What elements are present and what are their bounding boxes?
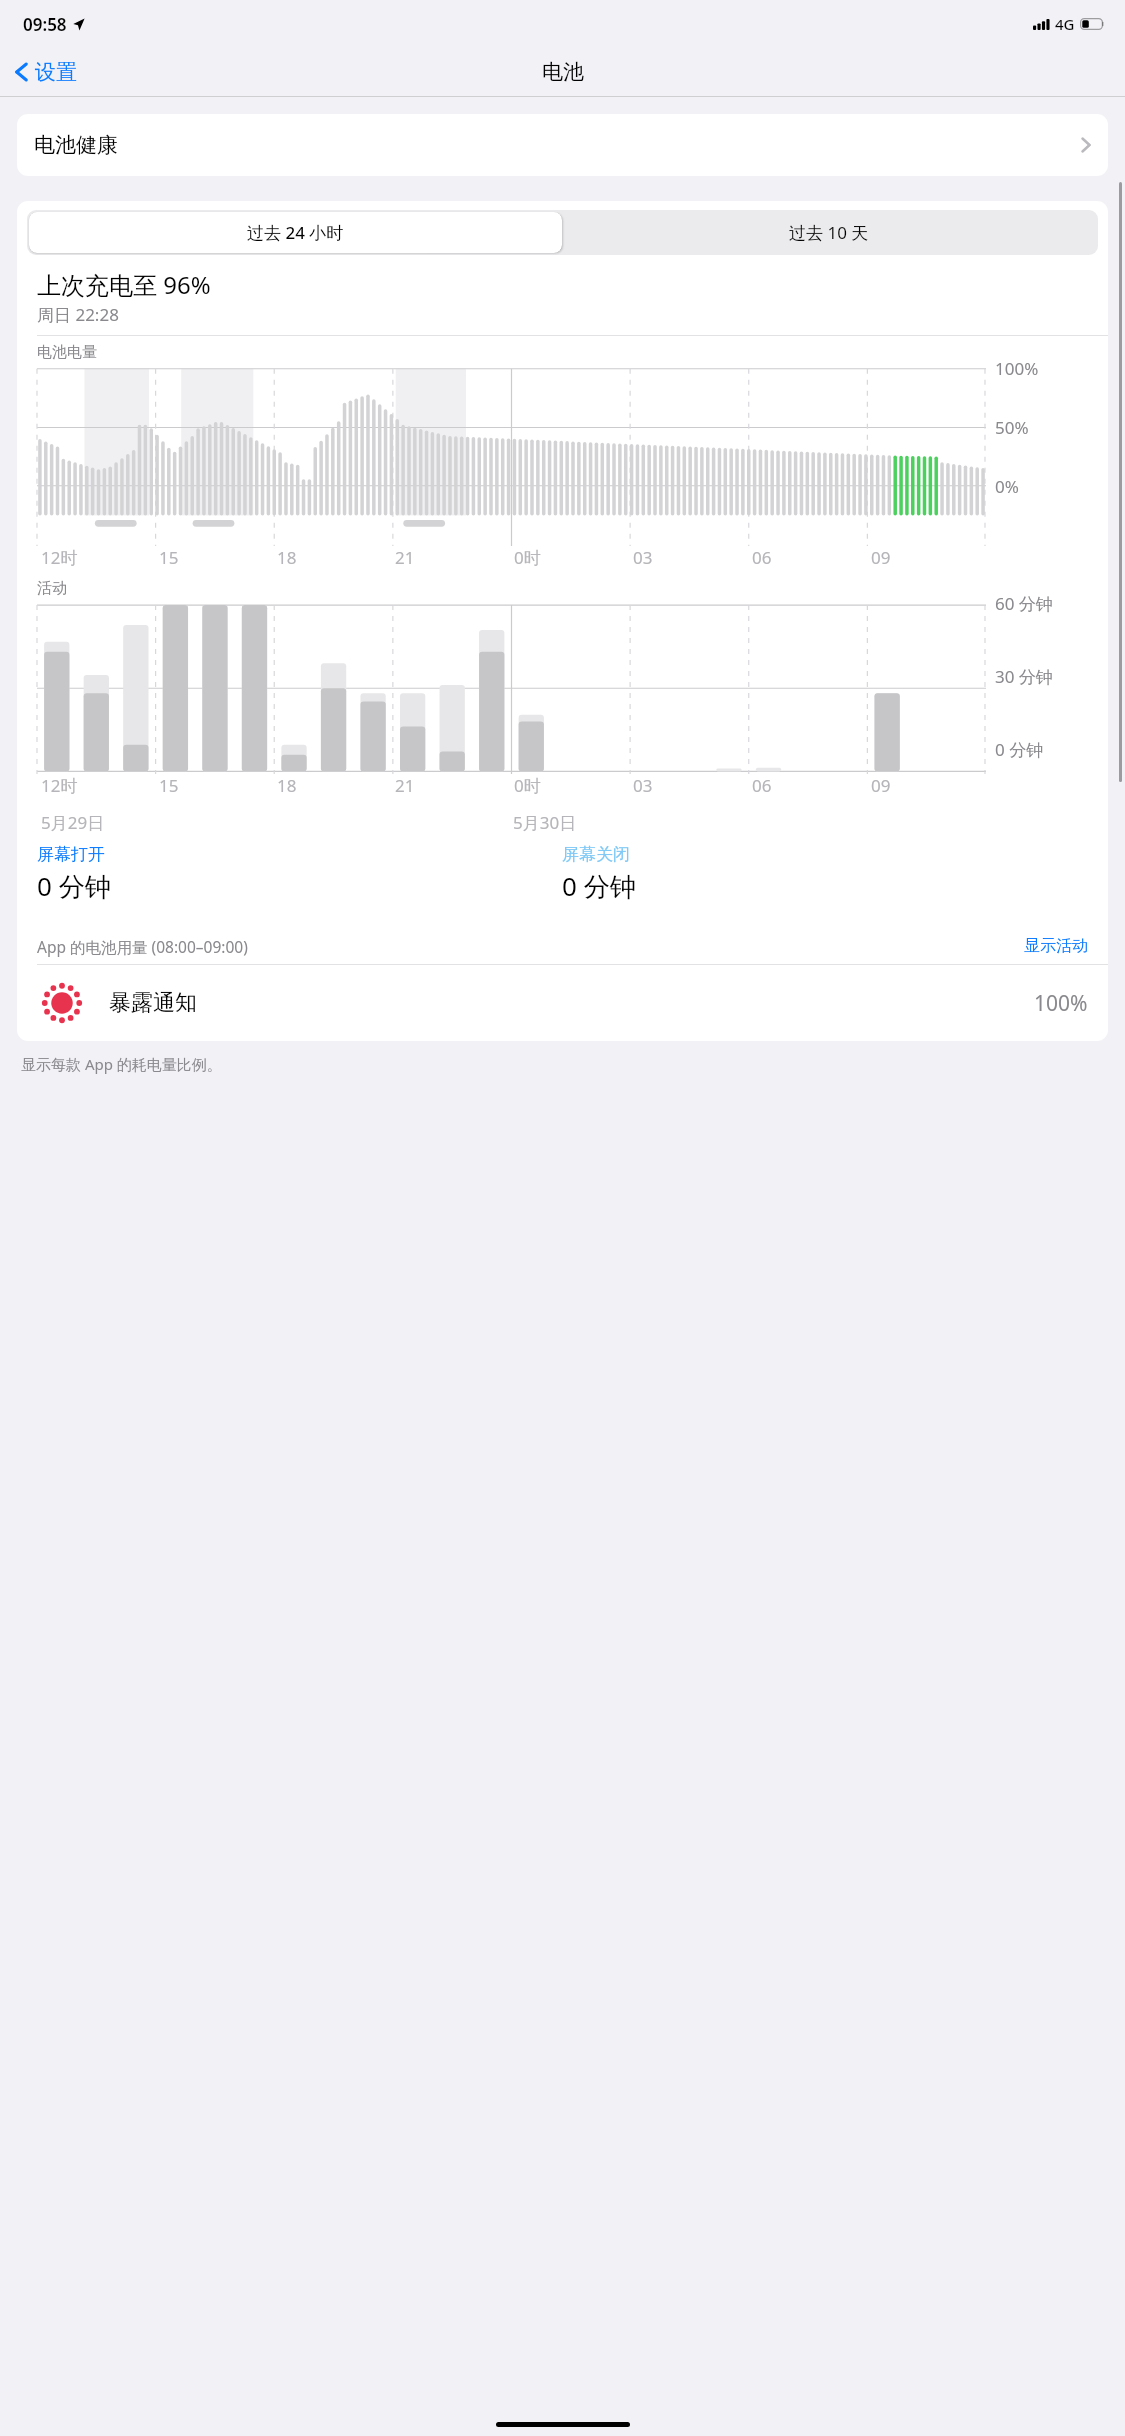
staticText: 活动 [37,579,67,598]
staticText: 06 [752,774,772,797]
button[interactable]: 过去 24 小时 [29,212,562,253]
button[interactable]: 电池健康 [17,114,1108,176]
staticText: 电池 [542,59,584,85]
staticText: 03 [633,546,653,569]
staticText: 21 [395,546,415,569]
staticText: 09 [871,546,891,569]
staticText: 0时 [514,774,541,797]
staticText: 15 [159,774,179,797]
button[interactable]: 过去 10 天 [562,212,1096,253]
staticText: 设置 [35,59,77,85]
staticText: 09 [871,774,891,797]
button[interactable]: 设置 [0,55,89,89]
staticText: 过去 10 天 [789,221,869,244]
staticText: 周日 22:28 [37,303,119,326]
staticText: 60 分钟 [995,592,1053,615]
staticText: 03 [633,774,653,797]
staticText: 5月30日 [513,811,577,834]
button[interactable]: 暴露通知 [17,965,1108,1041]
staticText: 15 [159,546,179,569]
staticText: 09:58 [23,13,67,36]
staticText: 显示每款 App 的耗电量比例。 [21,1054,222,1074]
staticText: 06 [752,546,772,569]
staticText: 18 [277,774,297,797]
other: 暴露通知 [37,978,87,1028]
staticText: 0 分钟 [37,868,111,904]
staticText: 屏幕打开 [37,844,105,865]
staticText: 5月29日 [41,811,105,834]
staticText: 0时 [514,546,541,569]
staticText: 100% [1034,989,1088,1018]
staticText: 显示活动 [1024,936,1088,956]
staticText: 0 分钟 [995,738,1044,761]
staticText: 30 分钟 [995,665,1053,688]
staticText: 屏幕关闭 [562,844,630,865]
staticText: 0% [995,475,1019,498]
staticText: 4G [1055,14,1075,34]
staticText: 0 分钟 [562,868,636,904]
staticText: 18 [277,546,297,569]
staticText: 电池电量 [37,343,97,362]
staticText: 过去 24 小时 [247,221,344,244]
staticText: 电池健康 [34,132,118,158]
staticText: 12时 [41,774,78,797]
button[interactable]: 显示活动 [1020,932,1092,960]
staticText: 12时 [41,546,78,569]
staticText: 50% [995,416,1029,439]
staticText: App 的电池用量 (08:00–09:00) [37,936,248,957]
staticText: 21 [395,774,415,797]
staticText: 暴露通知 [109,989,197,1017]
staticText: 上次充电至 96% [37,268,211,301]
staticText: 100% [995,357,1039,380]
